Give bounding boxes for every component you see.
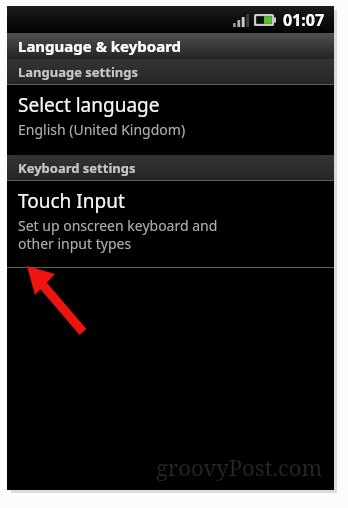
staticText: Set up onscreen keyboard and other input… bbox=[18, 216, 218, 253]
button[interactable]: Select language bbox=[7, 85, 334, 155]
staticText: English (United Kingdom) bbox=[18, 120, 186, 139]
staticText: Keyboard settings bbox=[18, 159, 136, 177]
staticText: Language & keyboard bbox=[18, 36, 182, 56]
button[interactable]: Touch Input bbox=[7, 181, 334, 267]
staticText: 01:07 bbox=[283, 9, 325, 31]
staticText: Select language bbox=[18, 92, 160, 118]
staticText: groovyPost.com bbox=[156, 452, 323, 482]
staticText: Touch Input bbox=[18, 188, 125, 214]
staticText: Language settings bbox=[18, 63, 138, 81]
